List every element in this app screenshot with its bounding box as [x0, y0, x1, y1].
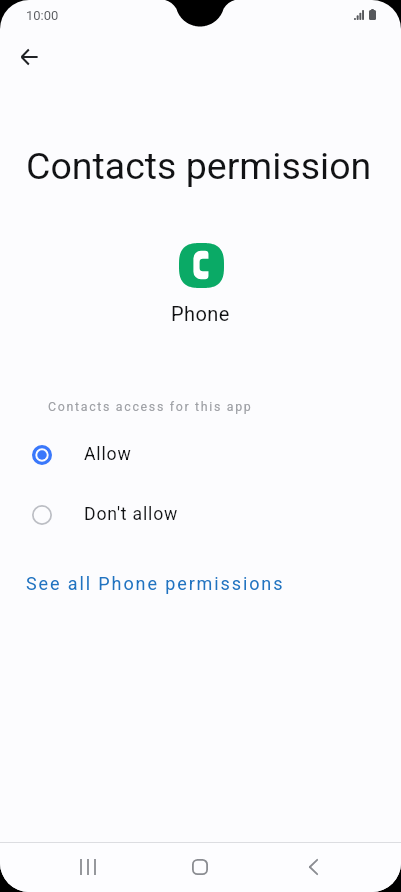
- button[interactable]: Recent apps: [64, 843, 112, 891]
- staticText: 10:00: [26, 8, 59, 23]
- staticText: Contacts access for this app: [48, 399, 253, 414]
- button[interactable]: [0, 425, 401, 485]
- button[interactable]: Navigate up: [7, 35, 51, 79]
- button[interactable]: Home: [176, 843, 224, 891]
- staticText: Contacts permission: [26, 144, 372, 188]
- button[interactable]: Back: [289, 843, 337, 891]
- staticText: See all Phone permissions: [26, 573, 285, 594]
- staticText: Don't allow: [84, 504, 179, 525]
- staticText: Phone: [171, 302, 230, 325]
- button[interactable]: [0, 485, 401, 545]
- staticText: Allow: [84, 444, 132, 465]
- button[interactable]: See all Phone permissions: [20, 566, 291, 601]
